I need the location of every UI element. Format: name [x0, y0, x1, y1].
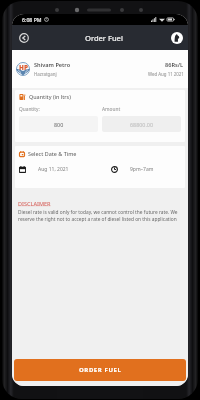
button[interactable]: Call	[171, 32, 183, 44]
staticText: Order Fuel	[85, 33, 123, 43]
staticText: 86Rs/L	[165, 61, 184, 69]
staticText: ORDER FUEL	[79, 366, 122, 374]
staticText: Amount	[102, 106, 121, 113]
staticText: 800	[54, 121, 64, 128]
staticText: Quantity (in ltrs)	[29, 93, 71, 100]
staticText: Quantity:	[19, 106, 40, 113]
staticText: 9pm–7am	[130, 166, 154, 173]
button[interactable]: Back	[16, 30, 31, 45]
staticText: Hazratganj	[34, 71, 57, 77]
staticText: 68800.00	[130, 121, 154, 128]
staticText: DISCLAIMER	[18, 200, 51, 207]
button[interactable]: 800	[19, 116, 98, 132]
staticText: Select Date & Time	[28, 150, 77, 157]
staticText: HP	[19, 63, 28, 72]
button[interactable]: ORDER FUEL	[14, 359, 186, 381]
button[interactable]: Aug 11, 2021	[19, 166, 100, 173]
staticText: Shivam Petro	[34, 61, 71, 69]
staticText: Aug 11, 2021	[38, 166, 69, 173]
staticText: Diesel rate is valid only for today, we …	[18, 209, 182, 223]
staticText: Wed Aug 11 2021	[148, 71, 184, 77]
button[interactable]: 9pm–7am	[100, 166, 181, 173]
staticText: 6:08 PM	[22, 16, 42, 23]
